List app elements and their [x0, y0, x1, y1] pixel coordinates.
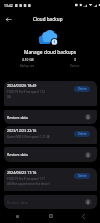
staticText: Restore data [7, 115, 85, 120]
button[interactable]: Info [85, 152, 91, 158]
staticText: 13:42 [4, 3, 13, 8]
button[interactable]: Info [85, 199, 91, 205]
staticText: 2023/12/23 22:16 [7, 128, 37, 133]
button[interactable]: Delete [74, 173, 90, 179]
button[interactable]: Restore data [4, 147, 97, 162]
staticText: Xiaomi MIX 3 (First space) 1.21 GB [7, 135, 50, 139]
staticText: Cloud backup [33, 16, 63, 22]
button[interactable]: Delete [74, 86, 90, 92]
button[interactable]: Back [67, 209, 100, 223]
staticText: 4.10 GB [22, 58, 34, 62]
button[interactable]: Recents [0, 209, 34, 223]
button[interactable]: Back [3, 14, 14, 25]
staticText: 3 [74, 58, 76, 62]
staticText: POCO F5 Pro (First space) 1.17 GB (Not s… [7, 177, 50, 186]
button[interactable]: Info [85, 114, 91, 120]
staticText: Restore data [7, 200, 85, 205]
button[interactable]: 2023/12/23 22:16 [4, 126, 97, 144]
button[interactable]: 2024/06/23 17:16 [4, 168, 97, 191]
staticText: 2024/06/23 17:16 [7, 170, 37, 175]
staticText: Devices [70, 64, 80, 68]
button[interactable]: Home [34, 209, 67, 223]
staticText: Delete [78, 174, 87, 178]
staticText: 2024/03/26 18:49 [7, 83, 37, 88]
staticText: Restore data [7, 152, 85, 157]
staticText: Backup size [20, 64, 35, 68]
staticText: Delete [78, 87, 87, 91]
staticText: POCO F5 Pro (First space) 1.72 GB [7, 90, 45, 99]
button[interactable]: Delete [74, 131, 90, 137]
button[interactable]: 2024/03/26 18:49 [4, 81, 97, 106]
button[interactable]: Restore data [4, 110, 97, 124]
staticText: Manage cloud backups [0, 49, 100, 56]
button[interactable]: Restore data [4, 195, 97, 209]
staticText: Delete [78, 132, 87, 136]
